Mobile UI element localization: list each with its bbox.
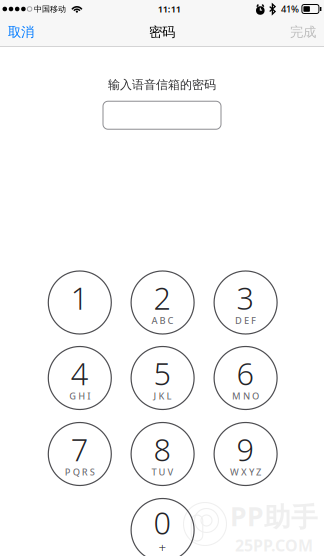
staticText: D E F	[235, 314, 256, 327]
staticText: 输入语音信箱的密码	[108, 77, 216, 92]
staticText: M N O	[232, 390, 259, 402]
staticText: 密码	[149, 24, 175, 40]
staticText: 5	[154, 353, 172, 394]
staticText: 11:11	[158, 3, 181, 15]
staticText: 3	[237, 277, 255, 318]
staticText: P Q R S	[65, 466, 95, 478]
staticText: G H I	[69, 390, 90, 402]
staticText: 0	[154, 502, 172, 543]
staticText: 7	[71, 429, 89, 470]
staticText: 1	[71, 277, 89, 318]
button[interactable]: 取消	[0, 18, 42, 46]
button[interactable]: 1	[48, 271, 111, 334]
staticText: PP助手	[230, 498, 318, 534]
staticText: T U V	[152, 466, 174, 478]
button[interactable]: 4	[48, 346, 111, 409]
button[interactable]: 8	[131, 422, 194, 485]
button[interactable]: 9	[214, 422, 277, 485]
button[interactable]: 2	[131, 271, 194, 334]
staticText: W X Y Z	[230, 466, 261, 478]
button[interactable]: 7	[48, 422, 111, 485]
button[interactable]: 0	[131, 498, 194, 556]
staticText: 4	[71, 353, 89, 394]
staticText: 9	[237, 429, 255, 470]
staticText: 8	[154, 429, 172, 470]
staticText: 6	[237, 353, 255, 394]
staticText: 完成	[290, 24, 316, 40]
staticText: 25PP.COM	[235, 535, 313, 556]
button[interactable]: 3	[214, 271, 277, 334]
button[interactable]: 完成	[282, 18, 324, 46]
button[interactable]: 6	[214, 346, 277, 409]
button[interactable]: 5	[131, 346, 194, 409]
staticText: J K L	[154, 390, 172, 402]
staticText: 2	[154, 277, 172, 318]
staticText: 中国移动	[34, 4, 66, 14]
staticText: A B C	[152, 314, 174, 327]
staticText: 取消	[8, 24, 34, 40]
staticText: +	[159, 539, 167, 556]
staticText: 41%	[281, 3, 299, 15]
